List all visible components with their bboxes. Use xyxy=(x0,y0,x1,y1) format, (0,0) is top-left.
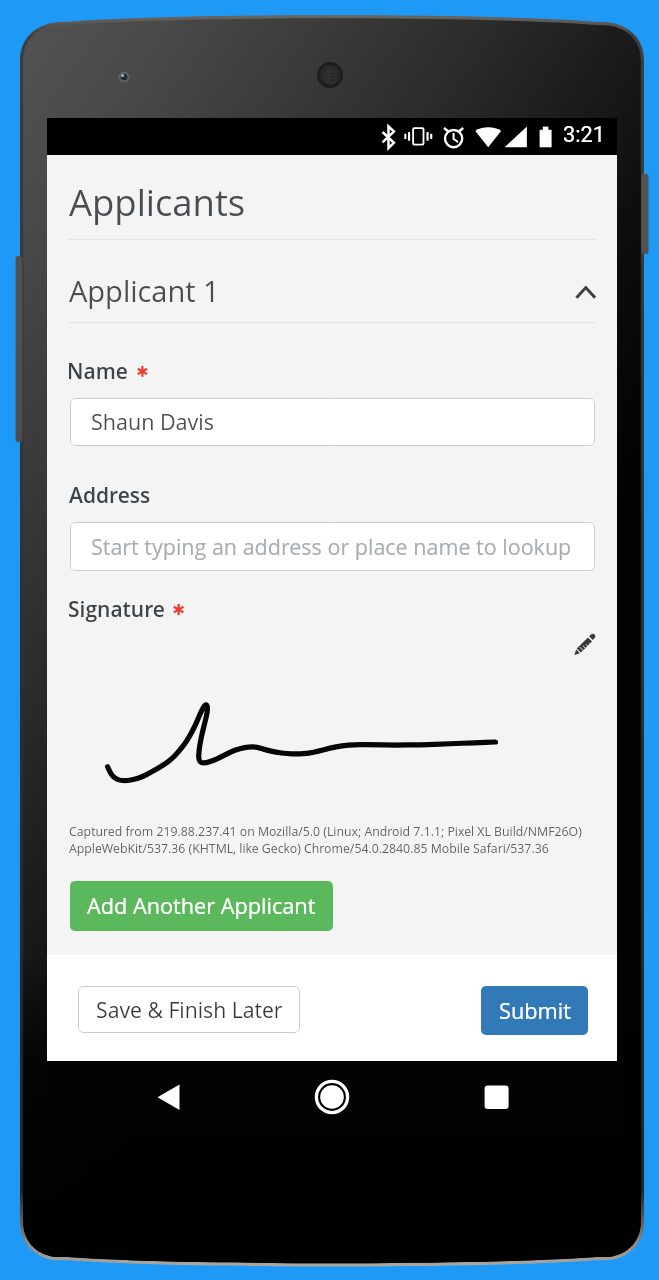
button[interactable]: Submit xyxy=(481,986,588,1035)
staticText: Submit xyxy=(499,996,571,1026)
staticText: Shaun Davis xyxy=(91,407,215,436)
staticText: Applicant 1 xyxy=(69,271,220,310)
staticText: AppleWebKit/537.36 (KHTML, like Gecko) C… xyxy=(69,840,549,857)
button[interactable]: Edit signature xyxy=(566,625,604,663)
button[interactable]: Applicant 1 xyxy=(69,240,595,322)
button[interactable]: Add Another Applicant xyxy=(70,881,333,931)
button[interactable]: Start typing an address or place name to… xyxy=(70,522,595,571)
staticText: Signature xyxy=(68,595,165,624)
staticText: Save & Finish Later xyxy=(96,995,283,1024)
button[interactable]: Save & Finish Later xyxy=(78,986,300,1033)
staticText: Captured from 219.88.237.41 on Mozilla/5… xyxy=(69,823,582,840)
staticText: Address xyxy=(69,481,151,510)
staticText: Applicants xyxy=(69,177,246,227)
staticText: Name xyxy=(67,357,128,386)
staticText: Start typing an address or place name to… xyxy=(91,532,572,561)
staticText: 3:21 xyxy=(563,122,606,148)
other: Collapse xyxy=(575,283,597,305)
button[interactable]: Shaun Davis xyxy=(70,398,595,446)
staticText: Add Another Applicant xyxy=(87,891,316,921)
